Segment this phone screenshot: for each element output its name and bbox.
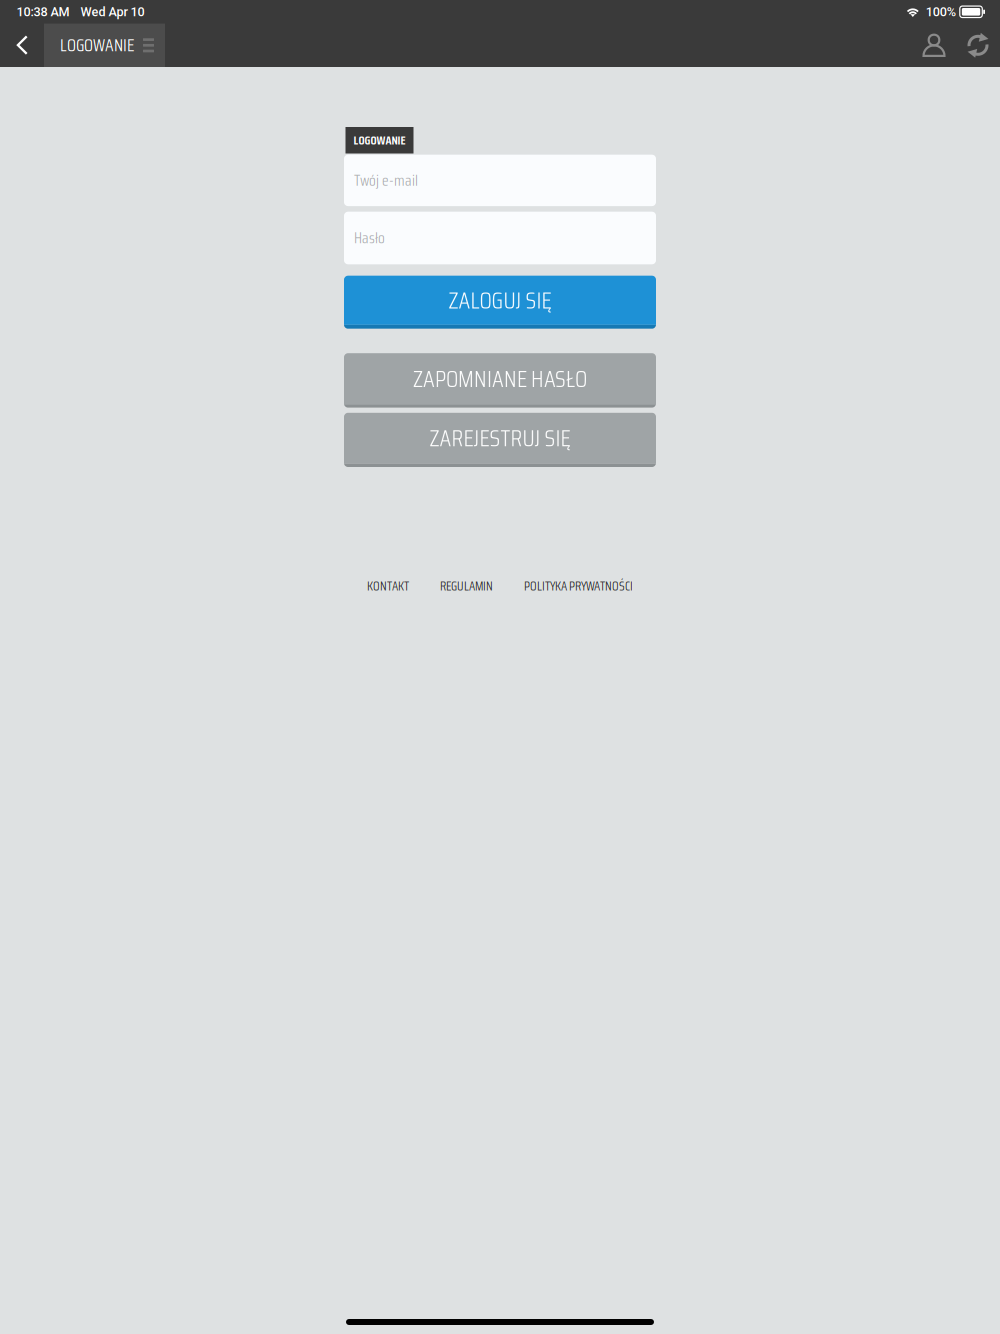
staticText: 100% bbox=[926, 4, 956, 19]
staticText: KONTAKT bbox=[367, 576, 409, 596]
staticText: Twój e-mail bbox=[354, 168, 418, 192]
staticText: ZALOGUJ SIĘ bbox=[448, 282, 551, 319]
staticText: ZAPOMNIANE HASŁO bbox=[413, 360, 587, 397]
staticText: POLITYKA PRYWATNOŚCI bbox=[524, 576, 633, 596]
button[interactable]: ZALOGUJ SIĘ bbox=[344, 276, 656, 329]
button[interactable]: ZAPOMNIANE HASŁO bbox=[344, 353, 656, 408]
staticText: ZAREJESTRUJ SIĘ bbox=[429, 419, 570, 457]
button[interactable]: Refresh bbox=[956, 24, 1000, 67]
button[interactable]: REGULAMIN bbox=[440, 576, 493, 596]
staticText: LOGOWANIE bbox=[60, 32, 134, 59]
button[interactable]: KONTAKT bbox=[367, 576, 409, 596]
button[interactable]: LOGOWANIE bbox=[44, 24, 165, 67]
button[interactable]: ZAREJESTRUJ SIĘ bbox=[344, 413, 656, 467]
staticText: Hasło bbox=[354, 226, 385, 250]
button[interactable]: POLITYKA PRYWATNOŚCI bbox=[524, 576, 633, 596]
button[interactable]: Account bbox=[912, 24, 956, 67]
staticText: REGULAMIN bbox=[440, 576, 493, 596]
button[interactable]: Back bbox=[0, 24, 44, 67]
staticText: Wed Apr 10 bbox=[80, 4, 144, 19]
staticText: 10:38 AM bbox=[16, 4, 69, 19]
staticText: LOGOWANIE bbox=[353, 131, 405, 150]
